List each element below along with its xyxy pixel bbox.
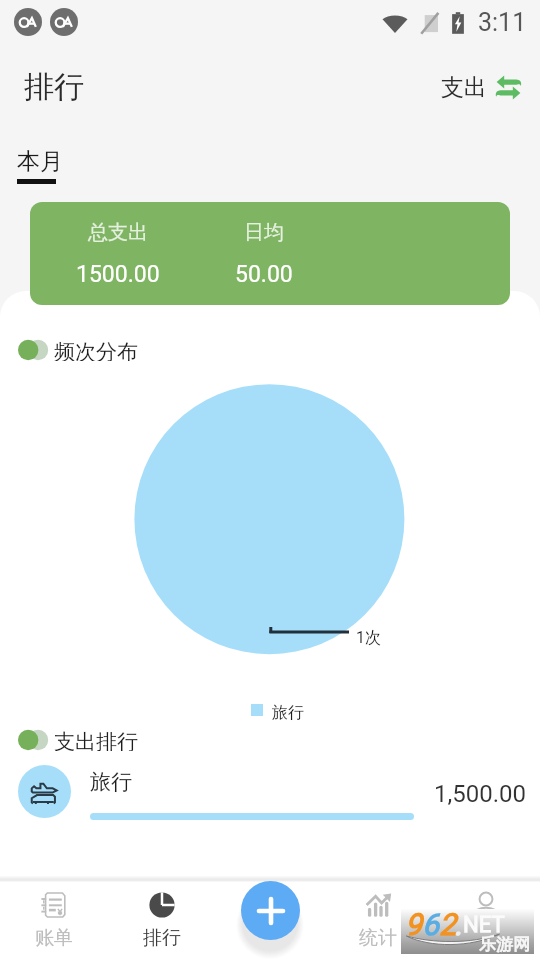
button[interactable]: 我的	[432, 876, 540, 960]
staticText: 1,500.00	[434, 780, 526, 808]
staticText: 账单	[35, 926, 73, 950]
button[interactable]: 支出排行	[18, 729, 138, 751]
button[interactable]: Add transaction	[241, 881, 300, 940]
staticText: 排行	[24, 68, 84, 106]
staticText: 1500.00	[76, 261, 160, 288]
staticText: 乐游网	[479, 934, 530, 955]
button[interactable]: 账单	[0, 876, 108, 960]
button[interactable]: 旅行	[0, 760, 540, 824]
button[interactable]: 统计	[324, 876, 432, 960]
staticText: 日均	[244, 220, 284, 245]
staticText: 3:11	[478, 8, 527, 37]
staticText: 6	[422, 907, 439, 942]
staticText: 总支出	[88, 220, 148, 245]
staticText: 排行	[143, 926, 181, 950]
staticText: 9	[405, 907, 422, 942]
button[interactable]: 频次分布	[18, 339, 138, 361]
staticText: 2	[439, 907, 456, 942]
staticText: 支出	[441, 73, 487, 102]
button[interactable]: 支出	[437, 67, 526, 108]
staticText: 旅行	[272, 703, 304, 723]
staticText: NET	[463, 912, 505, 938]
staticText: 统计	[359, 926, 397, 950]
staticText: 支出排行	[54, 729, 138, 751]
staticText: 本月	[17, 147, 63, 176]
staticText: 1次	[356, 628, 381, 648]
staticText: 频次分布	[54, 339, 138, 361]
button[interactable]: 排行	[108, 876, 216, 960]
staticText: 旅行	[90, 769, 132, 795]
button[interactable]: 本月	[17, 147, 63, 184]
button[interactable]: 总支出	[30, 202, 510, 305]
staticText: 50.00	[235, 261, 293, 288]
staticText: 我的	[467, 926, 505, 950]
staticText: .	[454, 907, 462, 942]
